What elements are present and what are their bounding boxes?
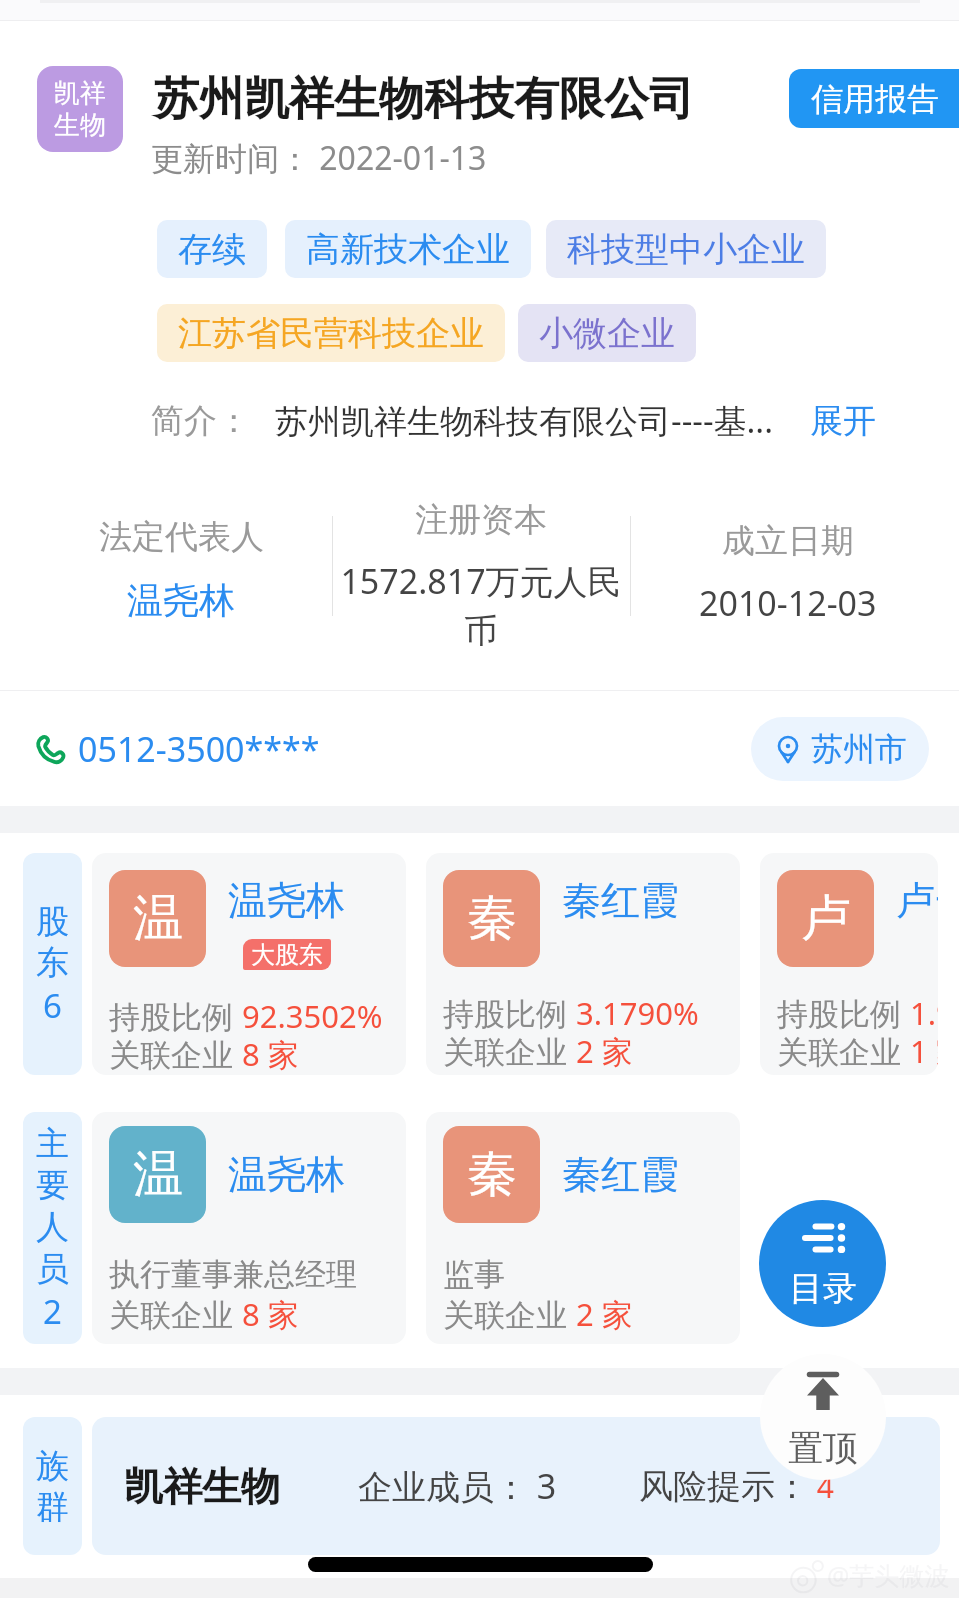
staticText: 苏州凯祥生物科技有限公司 bbox=[154, 71, 694, 128]
staticText: 简介： bbox=[151, 400, 250, 442]
staticText: 苏州凯祥生物科技有限公司----基... bbox=[275, 398, 774, 443]
staticText: 秦红霞 bbox=[562, 1150, 679, 1199]
staticText: @芋头微波 bbox=[827, 1558, 950, 1592]
staticText: 关联企业 bbox=[109, 1293, 242, 1331]
button[interactable]: 存续 bbox=[157, 220, 267, 278]
staticText: 温 bbox=[133, 887, 183, 950]
staticText: 苏州市 bbox=[811, 729, 907, 769]
staticText: 更新时间： 2022-01-13 bbox=[151, 136, 487, 180]
staticText: 信用报告 bbox=[811, 79, 939, 119]
staticText: 秦 bbox=[467, 1143, 517, 1206]
staticText: 江苏省民营科技企业 bbox=[178, 312, 484, 355]
staticText: 目录 bbox=[789, 1267, 857, 1310]
staticText: 4 bbox=[809, 1466, 834, 1507]
staticText: 温尧林 bbox=[228, 1150, 345, 1199]
staticText: 秦 bbox=[467, 887, 517, 950]
staticText: 持股比例 bbox=[777, 992, 910, 1030]
button[interactable]: 主 要 人 员 2 bbox=[23, 1112, 82, 1344]
button[interactable]: 温 bbox=[92, 1112, 406, 1344]
staticText: 持股比例 bbox=[443, 992, 576, 1030]
staticText: 2 家 bbox=[576, 1293, 633, 1331]
staticText: 主 要 人 员 2 bbox=[36, 1123, 69, 1334]
button[interactable]: 目录 bbox=[759, 1200, 886, 1327]
staticText: 族 群 bbox=[36, 1445, 69, 1528]
button[interactable]: 族 群 bbox=[23, 1417, 82, 1555]
staticText: 展开 bbox=[810, 400, 876, 442]
staticText: 执行董事兼总经理 bbox=[109, 1255, 357, 1293]
staticText: 0512-3500**** bbox=[78, 726, 320, 772]
staticText: 成立日期 bbox=[722, 520, 854, 562]
staticText: 企业成员： 3 bbox=[358, 1463, 557, 1509]
staticText: 监事 bbox=[443, 1255, 505, 1293]
staticText: 凯祥 生物 bbox=[54, 77, 106, 142]
staticText: 小微企业 bbox=[539, 312, 675, 355]
staticText: 卢一川 bbox=[896, 876, 938, 925]
staticText: 存续 bbox=[178, 228, 246, 271]
staticText: 关联企业 bbox=[109, 1033, 242, 1071]
staticText: 8 家 bbox=[242, 1293, 299, 1331]
staticText: 3.1790% bbox=[576, 992, 699, 1030]
staticText: 法定代表人 bbox=[99, 516, 264, 558]
button[interactable]: 小微企业 bbox=[518, 304, 696, 362]
staticText: 置顶 bbox=[788, 1426, 858, 1470]
staticText: 温尧林 bbox=[127, 578, 235, 623]
staticText: 1572.817万元人民币 bbox=[333, 558, 629, 646]
button[interactable]: 秦 bbox=[426, 1112, 740, 1344]
staticText: 大股东 bbox=[251, 940, 323, 970]
staticText: 8 家 bbox=[242, 1033, 299, 1071]
staticText: 高新技术企业 bbox=[306, 228, 510, 271]
button[interactable]: 高新技术企业 bbox=[285, 220, 531, 278]
staticText: 卢 bbox=[801, 887, 851, 950]
staticText: 92.3502% bbox=[242, 995, 383, 1033]
button[interactable]: 股 东 6 bbox=[23, 853, 82, 1075]
staticText: 注册资本 bbox=[415, 499, 547, 541]
button[interactable]: 凯祥生物 bbox=[92, 1417, 940, 1555]
button[interactable]: 秦 bbox=[426, 853, 740, 1075]
staticText: 关联企业 bbox=[777, 1030, 910, 1068]
staticText: 秦红霞 bbox=[562, 876, 679, 925]
staticText: 科技型中小企业 bbox=[567, 228, 805, 271]
staticText: 2010-12-03 bbox=[699, 580, 877, 626]
button[interactable]: 温 bbox=[92, 853, 406, 1075]
button[interactable]: 展开 bbox=[810, 400, 876, 442]
button[interactable]: Scroll to top bbox=[760, 1354, 886, 1480]
staticText: 1.9518% bbox=[910, 992, 938, 1030]
button[interactable]: 0512-3500**** bbox=[34, 726, 320, 772]
button[interactable]: 卢 bbox=[760, 853, 938, 1075]
staticText: 凯祥生物 bbox=[124, 1462, 280, 1511]
staticText: 1 家 bbox=[910, 1030, 938, 1068]
staticText: 股 东 6 bbox=[36, 901, 69, 1028]
staticText: 温尧林 bbox=[228, 876, 345, 925]
staticText: 2 家 bbox=[576, 1030, 633, 1068]
button[interactable]: 江苏省民营科技企业 bbox=[157, 304, 505, 362]
staticText: 风险提示： bbox=[639, 1465, 809, 1508]
staticText: 关联企业 bbox=[443, 1293, 576, 1331]
button[interactable]: 苏州市 bbox=[751, 717, 929, 781]
staticText: 关联企业 bbox=[443, 1030, 576, 1068]
button[interactable]: 科技型中小企业 bbox=[546, 220, 826, 278]
button[interactable]: 信用报告 bbox=[789, 69, 959, 128]
staticText: 持股比例 bbox=[109, 995, 242, 1033]
staticText: 温 bbox=[133, 1143, 183, 1206]
